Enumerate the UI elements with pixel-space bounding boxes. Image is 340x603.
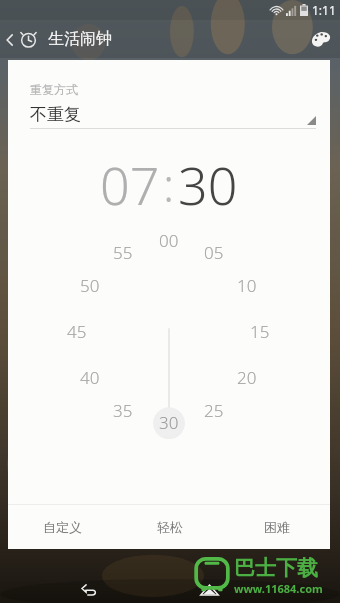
staticText: 07 (100, 149, 160, 220)
staticText: 20 (237, 366, 257, 389)
staticText: 05 (204, 241, 224, 264)
button[interactable]: Back (0, 26, 40, 53)
staticText: 困难 (264, 519, 290, 535)
staticText: 轻松 (157, 519, 183, 535)
staticText: 1:11 (312, 2, 336, 18)
staticText: 45 (67, 320, 87, 343)
button[interactable]: Theme (302, 25, 340, 54)
staticText: 50 (80, 274, 100, 297)
button[interactable]: 困难 (223, 505, 330, 549)
button[interactable]: 07 (100, 149, 160, 220)
staticText: 35 (113, 399, 133, 422)
staticText: 00 (159, 229, 179, 252)
staticText: 30 (159, 411, 179, 434)
button[interactable]: Home (186, 580, 233, 600)
staticText: : (163, 153, 175, 216)
staticText: 重复方式 (30, 82, 78, 97)
button[interactable]: Back (67, 579, 112, 600)
staticText: 55 (113, 241, 133, 264)
button[interactable]: 30 (178, 149, 238, 220)
staticText: 不重复 (30, 104, 81, 125)
staticText: 40 (80, 366, 100, 389)
button[interactable]: 重复方式 (8, 60, 330, 129)
staticText: 自定义 (43, 519, 82, 535)
staticText: www.11684.com (234, 581, 323, 596)
button[interactable]: 轻松 (116, 505, 223, 549)
staticText: 巴士下载 (234, 555, 318, 581)
staticText: 30 (178, 149, 238, 220)
staticText: 25 (204, 399, 224, 422)
staticText: 15 (250, 320, 270, 343)
button[interactable]: 00 (63, 226, 275, 438)
button[interactable]: 自定义 (8, 505, 116, 549)
staticText: 生活闹钟 (48, 29, 112, 49)
staticText: 10 (237, 274, 257, 297)
